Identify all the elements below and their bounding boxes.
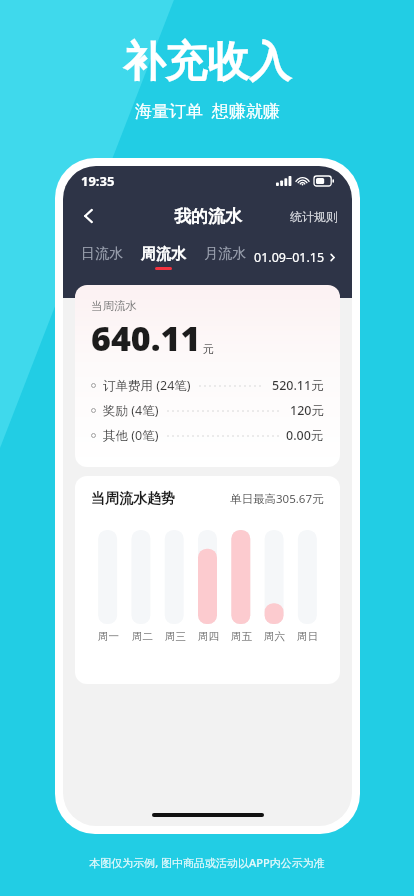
button[interactable]: 当周流水趋势 xyxy=(75,476,340,684)
staticText: 640.11 xyxy=(91,315,201,361)
staticText: 0.00元 xyxy=(286,427,324,444)
button[interactable]: 01.09–01.15 xyxy=(250,245,340,270)
button[interactable]: 月流水 xyxy=(200,245,250,269)
staticText: 日流水 xyxy=(81,245,123,263)
staticText: 元 xyxy=(203,342,214,356)
staticText: 本图仅为示例, 图中商品或活动以APP内公示为准 xyxy=(89,855,325,870)
button[interactable]: Back xyxy=(71,198,107,234)
staticText: 周五 xyxy=(231,630,252,643)
staticText: 周一 xyxy=(98,630,119,643)
staticText: 当周流水趋势 xyxy=(91,490,175,508)
staticText: 其他 (0笔) xyxy=(103,427,159,444)
button[interactable]: 周流水 xyxy=(137,245,190,270)
button[interactable]: 统计规则 xyxy=(276,201,352,232)
staticText: 周三 xyxy=(165,630,186,643)
staticText: 120元 xyxy=(290,402,324,419)
staticText: 海量订单 想赚就赚 xyxy=(135,99,280,122)
staticText: 单日最高305.67元 xyxy=(230,491,324,507)
staticText: 520.11元 xyxy=(272,377,324,394)
staticText: 19:35 xyxy=(81,172,115,190)
staticText: 周四 xyxy=(198,630,219,643)
staticText: 统计规则 xyxy=(290,209,338,224)
staticText: 当周流水 xyxy=(91,299,137,313)
staticText: 奖励 (4笔) xyxy=(103,402,159,419)
staticText: 周六 xyxy=(264,630,285,643)
staticText: 周流水 xyxy=(141,245,186,264)
button[interactable]: 当周流水 xyxy=(75,285,340,467)
button[interactable]: 日流水 xyxy=(77,245,127,269)
staticText: 周日 xyxy=(297,630,318,643)
staticText: 01.09–01.15 xyxy=(254,249,325,266)
staticText: 订单费用 (24笔) xyxy=(103,377,191,394)
staticText: 补充收入 xyxy=(123,36,291,89)
staticText: 月流水 xyxy=(204,245,246,263)
staticText: 我的流水 xyxy=(174,206,242,227)
staticText: 周二 xyxy=(132,630,153,643)
